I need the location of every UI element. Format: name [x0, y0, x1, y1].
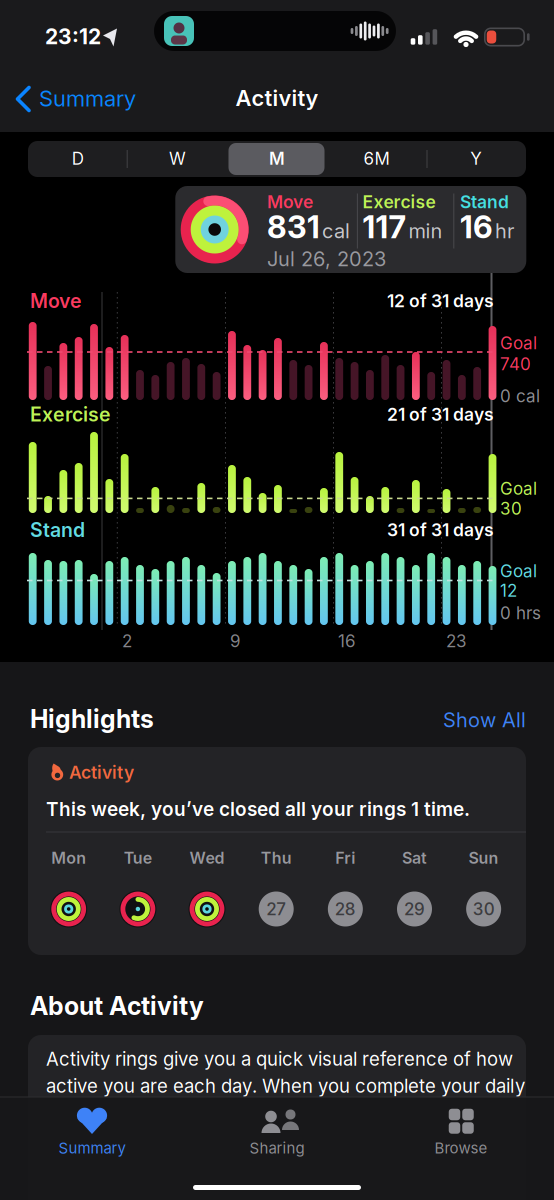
staticText: Browse — [434, 1139, 487, 1157]
staticText: min — [408, 219, 442, 243]
staticText: Show All — [443, 708, 526, 732]
staticText: 0 cal — [500, 386, 540, 406]
button[interactable]: Browse — [401, 1099, 521, 1155]
staticText: Exercise — [362, 191, 435, 213]
button[interactable]: D — [30, 142, 126, 174]
staticText: Stand — [460, 191, 509, 213]
staticText: Thu — [261, 848, 292, 868]
staticText: 30 — [473, 899, 495, 919]
staticText: Y — [470, 148, 482, 169]
button[interactable]: W — [129, 142, 225, 174]
staticText: 16 — [460, 208, 493, 246]
button[interactable]: Sharing — [217, 1099, 337, 1155]
staticText: 21 of 31 days — [387, 404, 494, 425]
staticText: 23:12 — [45, 24, 101, 49]
staticText: Goal — [500, 333, 537, 353]
staticText: Sat — [402, 848, 427, 868]
staticText: M — [269, 148, 285, 169]
staticText: Activity — [69, 762, 134, 783]
staticText: active you are each day. When you comple… — [46, 1075, 525, 1097]
staticText: Stand — [30, 518, 85, 542]
staticText: 12 of 31 days — [387, 290, 494, 312]
staticText: 28 — [335, 899, 356, 919]
staticText: 0 hrs — [500, 603, 541, 623]
staticText: D — [72, 148, 84, 169]
button[interactable]: M — [229, 142, 325, 174]
staticText: 9 — [230, 631, 241, 651]
staticText: 16 — [338, 631, 356, 651]
staticText: Exercise — [30, 403, 111, 426]
staticText: Sun — [469, 848, 499, 868]
staticText: 831 — [267, 208, 320, 246]
button[interactable]: Summary — [32, 1099, 152, 1155]
staticText: About Activity — [30, 991, 204, 1021]
staticText: Goal — [500, 478, 537, 499]
staticText: 29 — [404, 899, 425, 919]
button[interactable]: 6M — [329, 142, 425, 174]
staticText: 31 of 31 days — [387, 519, 494, 541]
staticText: 23 — [446, 631, 467, 651]
staticText: Summary — [39, 85, 136, 112]
staticText: Highlights — [30, 704, 154, 734]
staticText: Summary — [58, 1139, 125, 1157]
button[interactable]: Activity highlight — [28, 747, 526, 955]
staticText: This week, you’ve closed all your rings … — [46, 797, 470, 820]
staticText: Tue — [124, 848, 152, 868]
staticText: Sharing — [249, 1139, 304, 1157]
staticText: Move — [30, 289, 82, 313]
staticText: 117 — [362, 208, 406, 246]
staticText: 27 — [266, 899, 286, 919]
staticText: W — [169, 148, 186, 169]
staticText: 30 — [500, 498, 522, 519]
staticText: Move — [267, 191, 313, 213]
staticText: Activity — [235, 85, 318, 111]
staticText: 12 — [500, 580, 517, 601]
staticText: Jul 26, 2023 — [267, 247, 386, 271]
button[interactable]: Y — [428, 142, 524, 174]
staticText: hr — [495, 219, 514, 243]
staticText: Fri — [335, 848, 355, 868]
staticText: Activity rings give you a quick visual r… — [46, 1048, 513, 1070]
staticText: 6M — [364, 148, 390, 169]
staticText: 740 — [500, 354, 531, 374]
staticText: Goal — [500, 561, 537, 581]
staticText: Mon — [51, 848, 86, 868]
button[interactable]: Summary — [0, 0, 554, 1200]
staticText: Wed — [189, 848, 224, 868]
staticText: cal — [322, 219, 350, 243]
staticText: 2 — [122, 631, 132, 651]
button[interactable]: Show All — [0, 0, 554, 1200]
